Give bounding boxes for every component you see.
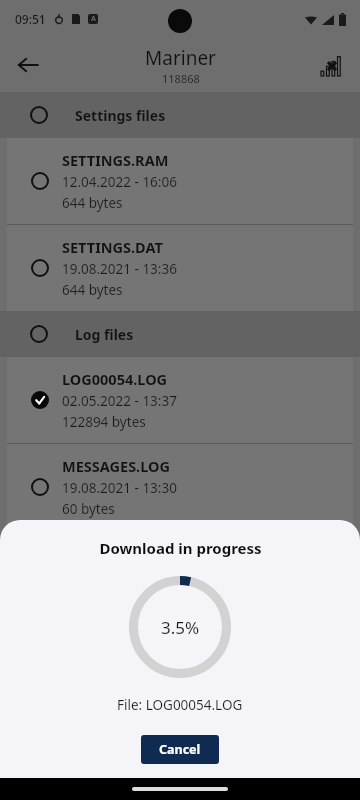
staticText: 60 bytes [62, 500, 115, 518]
staticText: SETTINGS.RAM [62, 150, 169, 170]
staticText: File: LOG00054.LOG [117, 696, 243, 714]
button[interactable]: Signal disconnected [310, 43, 354, 87]
staticText: 12.04.2022 - 16:06 [62, 173, 177, 191]
button[interactable]: SETTINGS.DAT [7, 225, 353, 311]
staticText: 19.08.2021 - 13:36 [62, 260, 177, 278]
staticText: 644 bytes [62, 281, 123, 299]
button[interactable]: MESSAGES.LOG [7, 444, 353, 530]
staticText: 19.08.2021 - 13:30 [62, 479, 177, 497]
staticText: LOG00054.LOG [62, 369, 168, 389]
staticText: Cancel [159, 741, 201, 758]
staticText: Mariner [145, 45, 216, 71]
staticText: Settings files [75, 106, 166, 125]
button[interactable]: Cancel [141, 735, 219, 764]
staticText: 3.5% [161, 616, 200, 639]
button[interactable]: Settings files [0, 92, 360, 138]
button[interactable]: SETTINGS.RAM [7, 138, 353, 224]
button[interactable]: Log files [0, 311, 360, 357]
staticText: MESSAGES.LOG [62, 456, 170, 476]
staticText: 644 bytes [62, 194, 123, 212]
button[interactable]: Back [6, 43, 50, 87]
staticText: 02.05.2022 - 13:37 [62, 392, 177, 410]
staticText: 118868 [162, 71, 200, 86]
staticText: 09:51 [15, 11, 46, 27]
staticText: SETTINGS.DAT [62, 237, 163, 257]
staticText: A [91, 14, 96, 24]
staticText: Download in progress [99, 538, 262, 558]
button[interactable]: LOG00054.LOG [7, 357, 353, 443]
staticText: Log files [75, 325, 134, 344]
staticText: 122894 bytes [62, 413, 146, 431]
